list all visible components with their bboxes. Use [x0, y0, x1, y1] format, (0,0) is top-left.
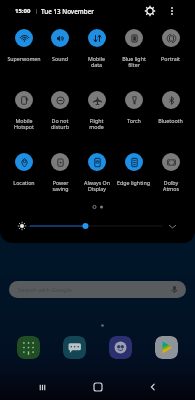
button[interactable]: browser [109, 336, 132, 359]
button[interactable]: apps [17, 336, 40, 359]
staticText: Torch [127, 117, 141, 124]
button[interactable]: Always On Display [78, 152, 115, 214]
staticText: Blue light filter [122, 55, 146, 69]
staticText: Bluetooth [158, 117, 183, 124]
button[interactable]: Bluetooth [152, 90, 189, 152]
button[interactable]: Expand [165, 219, 179, 233]
staticText: Power saving [52, 179, 69, 193]
button[interactable]: Mobile data [78, 28, 115, 90]
staticText: Sound [52, 55, 68, 62]
button[interactable]: Edge lighting [115, 152, 152, 214]
staticText: Dolby Atmos [163, 179, 179, 193]
button[interactable]: Brightness [28, 218, 165, 234]
staticText: Location [13, 179, 35, 186]
staticText: Mobile data [88, 55, 105, 69]
button[interactable]: Recents [30, 375, 54, 399]
button[interactable]: Power saving [42, 152, 78, 214]
staticText: Do not disturb [51, 117, 69, 131]
staticText: Flight mode [89, 117, 104, 131]
staticText: Portrait [161, 55, 180, 62]
button[interactable]: Mobile Hotspot [6, 90, 42, 152]
button[interactable]: Search with Google [9, 281, 186, 298]
staticText: Always On Display [84, 179, 110, 193]
button[interactable]: More options [164, 3, 180, 19]
button[interactable]: play [155, 336, 178, 359]
button[interactable]: Torch [115, 90, 152, 152]
button[interactable]: Dolby Atmos [152, 152, 189, 214]
button[interactable]: Home [86, 375, 110, 399]
button[interactable]: Flight mode [78, 90, 115, 152]
staticText: Superwomen [7, 55, 41, 62]
staticText: 15:00 [15, 7, 31, 15]
button[interactable]: Back [141, 375, 165, 399]
staticText: Search with Google [18, 286, 72, 294]
button[interactable]: Settings [142, 3, 158, 19]
staticText: Edge lighting [117, 179, 150, 186]
staticText: Tue 13 November [41, 7, 94, 16]
button[interactable]: Blue light filter [115, 28, 152, 90]
button[interactable]: Sound [42, 28, 78, 90]
button[interactable]: messages [63, 336, 86, 359]
button[interactable]: Superwomen [6, 28, 42, 90]
button[interactable]: Portrait [152, 28, 189, 90]
button[interactable]: Do not disturb [42, 90, 78, 152]
button[interactable]: Location [6, 152, 42, 214]
staticText: Mobile Hotspot [14, 117, 34, 131]
